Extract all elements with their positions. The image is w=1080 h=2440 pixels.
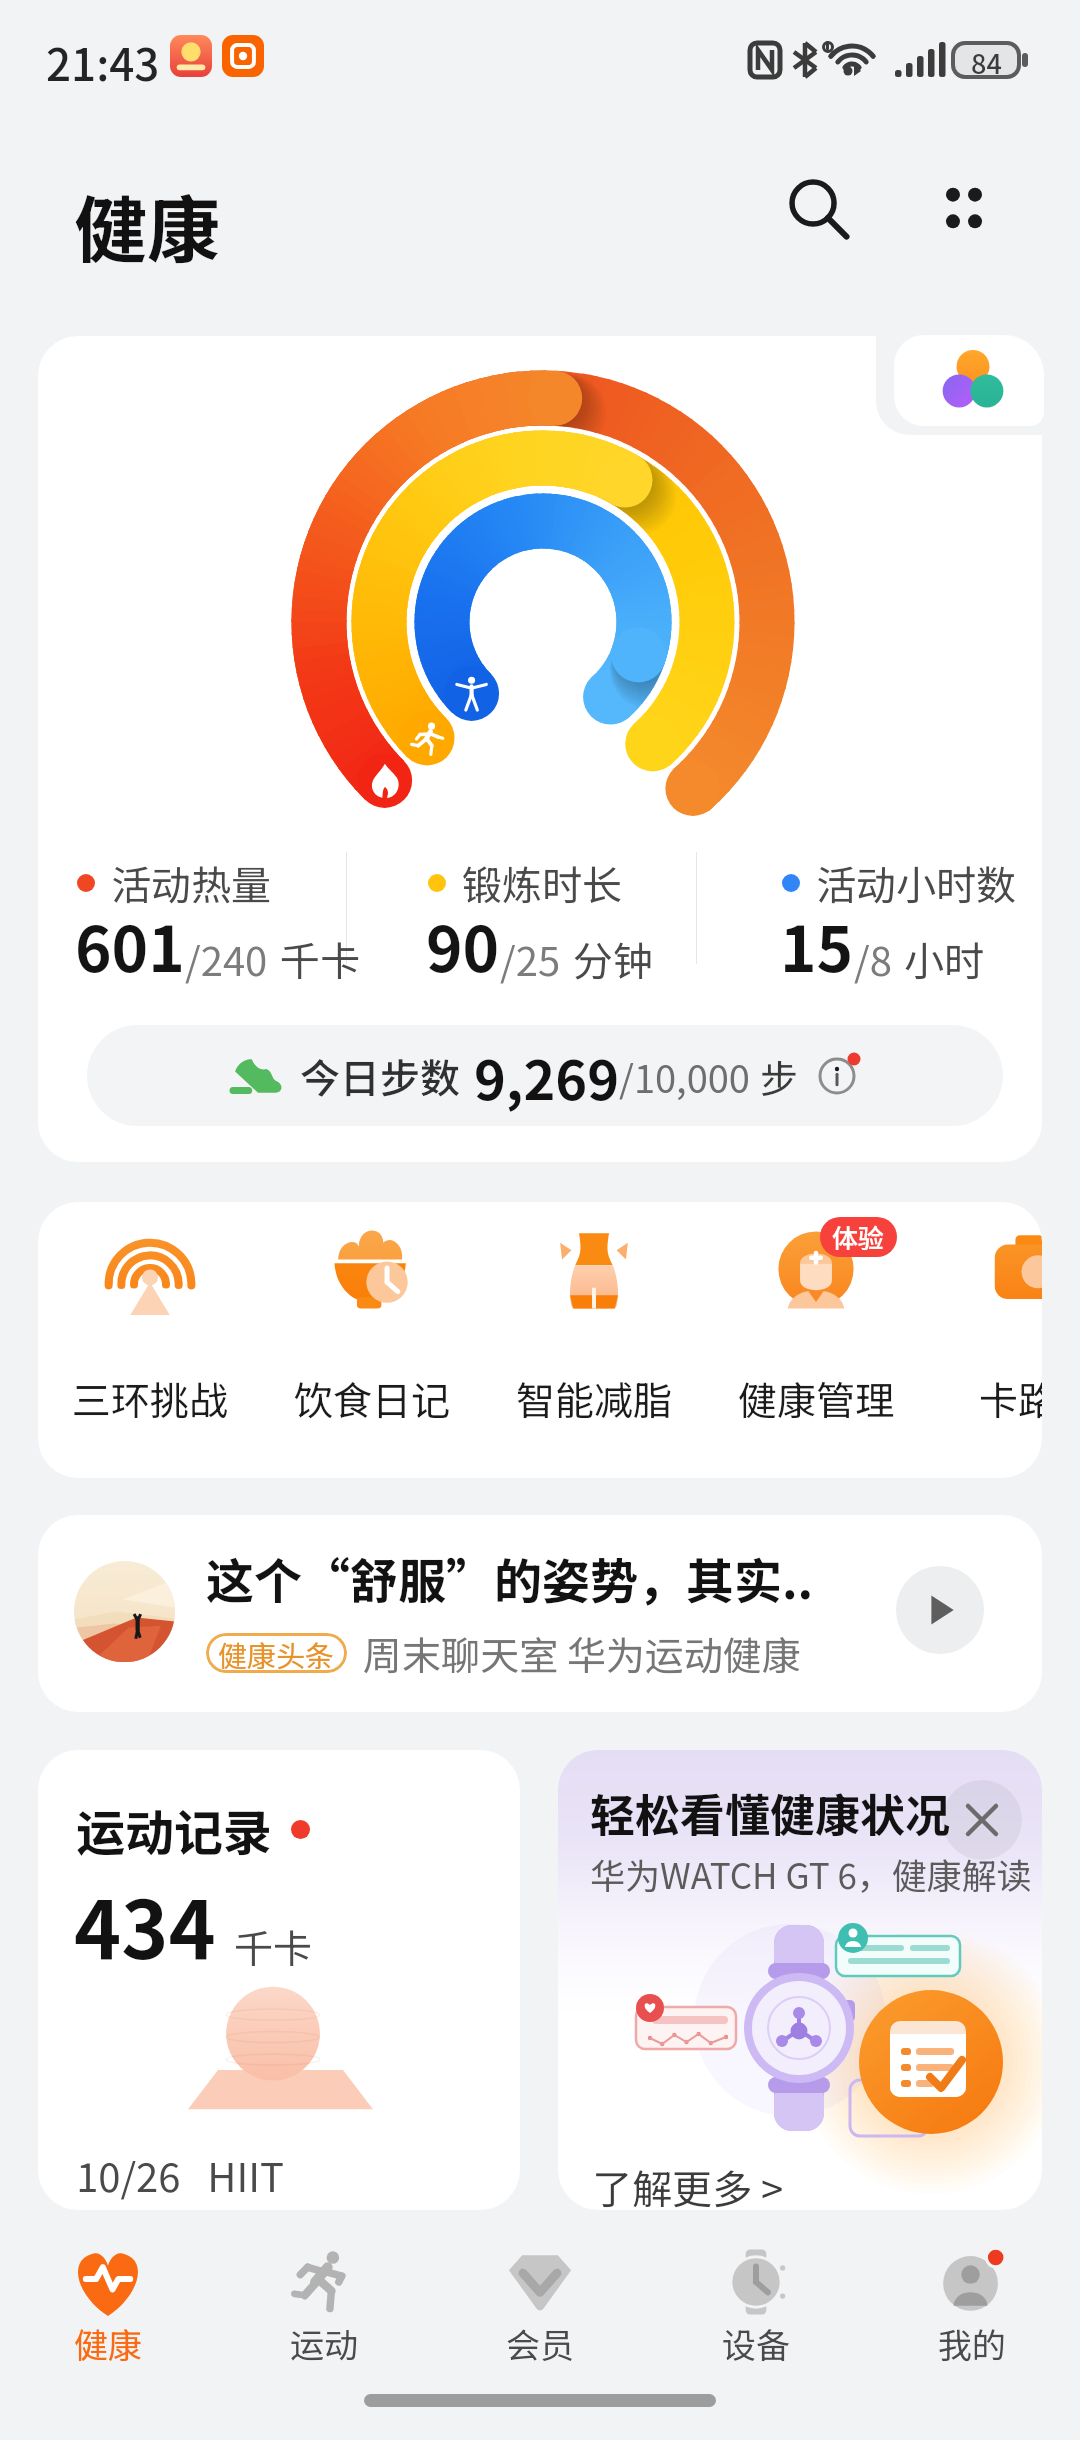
button[interactable]: Play [896,1566,984,1654]
staticText: 千卡 [234,1918,313,1974]
staticText: 活动小时数 [816,854,1016,912]
button[interactable]: 会员 [432,2232,648,2374]
staticText: 运动 [290,2319,358,2368]
staticText: 小时 [904,930,984,988]
button[interactable]: Three rings [894,335,1044,426]
button[interactable]: 运动记录 [38,1750,520,2210]
button[interactable]: Search [762,152,874,264]
staticText: 健康头条 [218,1633,335,1673]
staticText: 健康 [74,2319,142,2368]
staticText: 运动记录 [76,1794,273,1865]
staticText: 周末聊天室 华为运动健康 [363,1625,801,1681]
staticText: 我的 [938,2319,1006,2368]
button[interactable]: 设备 [648,2232,864,2374]
button[interactable]: 智能减脂 [493,1222,695,1426]
button[interactable]: Close [950,1788,1014,1852]
staticText: 活动热量 [111,854,271,912]
staticText: 90 [426,900,500,990]
staticText: 了解更多 > [592,2158,784,2210]
staticText: /10,000 [619,1049,750,1104]
staticText: 15 [780,900,854,990]
staticText: 智能减脂 [516,1370,673,1426]
button[interactable]: 轻松看懂健康状况 [558,1750,1042,2210]
staticText: 卡路里 [979,1370,1042,1426]
staticText: 体验 [832,1218,885,1256]
button[interactable]: 运动 [216,2232,432,2374]
button[interactable]: 三环挑战 [49,1222,251,1426]
staticText: 健康管理 [738,1370,895,1426]
button[interactable]: 今日步数 [87,1025,1003,1126]
staticText: 84 [971,43,1002,77]
button[interactable]: 我的 [864,2232,1080,2374]
staticText: 三环挑战 [72,1370,229,1426]
staticText: 华为WATCH GT 6，健康解读 [590,1848,1032,1899]
staticText: 434 [74,1866,216,1982]
button[interactable]: 活动热量 [38,336,1042,1162]
staticText: 锻炼时长 [462,854,622,912]
staticText: 9,269 [474,1037,619,1115]
staticText: 10/26 HIIT [76,2146,284,2204]
button[interactable]: More options [908,152,1020,264]
staticText: 饮食日记 [294,1370,451,1426]
staticText: 今日步数 [300,1047,460,1105]
button[interactable]: 体验 [715,1222,917,1426]
staticText: 这个“舒服”的姿势，其实.. [206,1543,814,1613]
staticText: 轻松看懂健康状况 [590,1780,951,1845]
button[interactable]: 饮食日记 [271,1222,473,1426]
staticText: 分钟 [573,930,653,988]
staticText: /8 [854,930,892,988]
button[interactable]: 这个“舒服”的姿势，其实.. [38,1515,1042,1712]
staticText: 会员 [506,2319,574,2368]
staticText: 601 [75,900,185,990]
staticText: 步 [760,1049,799,1104]
staticText: 健康 [74,172,220,278]
staticText: 设备 [722,2319,790,2368]
button[interactable]: 健康 [0,2232,216,2374]
staticText: /25 [500,930,561,988]
staticText: 千卡 [280,930,360,988]
button[interactable]: 卡路里 [937,1222,1042,1426]
staticText: /240 [185,930,268,988]
staticText: 21:43 [46,30,160,94]
